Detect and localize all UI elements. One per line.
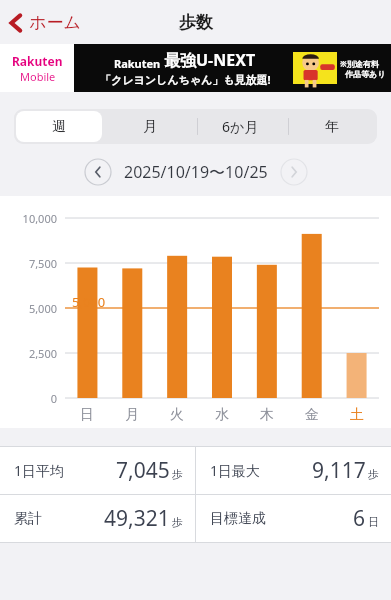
staticText: 2,500: [0, 346, 57, 361]
staticText: 年: [325, 118, 339, 136]
staticText: 「クレヨンしんちゃん」も見放題!: [100, 72, 271, 87]
button[interactable]: Rakuten: [0, 44, 391, 92]
staticText: 5,000: [72, 293, 106, 311]
staticText: Mobile: [20, 69, 56, 84]
staticText: 6か月: [222, 117, 259, 136]
staticText: 週: [52, 118, 66, 136]
staticText: 歩: [172, 515, 183, 529]
staticText: 10,000: [0, 211, 57, 226]
staticText: 2025/10/19〜10/25: [124, 161, 268, 183]
staticText: 土: [350, 406, 364, 424]
button[interactable]: 累計: [0, 495, 195, 542]
button[interactable]: 6か月: [197, 111, 284, 142]
staticText: 1日平均: [14, 461, 65, 480]
button[interactable]: 1日平均: [0, 447, 195, 494]
button[interactable]: 年: [288, 111, 375, 142]
staticText: 水: [215, 406, 229, 424]
staticText: 月: [125, 406, 139, 424]
staticText: 最強U-NEXT: [164, 49, 256, 71]
staticText: 火: [170, 406, 184, 424]
button[interactable]: 月: [106, 111, 193, 142]
staticText: 日: [368, 515, 379, 529]
staticText: Rakuten: [114, 56, 164, 71]
button[interactable]: 1日最大: [196, 447, 391, 494]
button[interactable]: 週: [16, 111, 102, 142]
staticText: 0: [0, 391, 57, 406]
staticText: 歩: [172, 467, 183, 481]
staticText: 6: [353, 504, 366, 533]
staticText: 9,117: [312, 456, 366, 485]
staticText: 目標達成: [210, 510, 266, 528]
staticText: Rakuten: [12, 53, 63, 69]
staticText: 作品等あり: [345, 69, 386, 79]
staticText: 月: [143, 118, 157, 136]
staticText: 7,045: [116, 456, 170, 485]
button[interactable]: 目標達成: [196, 495, 391, 542]
staticText: 49,321: [104, 504, 170, 533]
button[interactable]: 次の週: [280, 158, 308, 186]
staticText: 7,500: [0, 256, 57, 271]
staticText: ※別途有料: [340, 58, 379, 69]
staticText: 5,000: [0, 301, 57, 316]
staticText: 歩: [368, 467, 379, 481]
staticText: 日: [80, 406, 94, 424]
button[interactable]: ホーム: [0, 6, 91, 39]
staticText: 累計: [14, 510, 42, 528]
staticText: 歩数: [179, 12, 213, 33]
staticText: ホーム: [29, 12, 81, 33]
staticText: 金: [305, 406, 319, 424]
staticText: 1日最大: [210, 461, 261, 480]
staticText: 木: [260, 406, 274, 424]
button[interactable]: 前の週: [84, 158, 112, 186]
